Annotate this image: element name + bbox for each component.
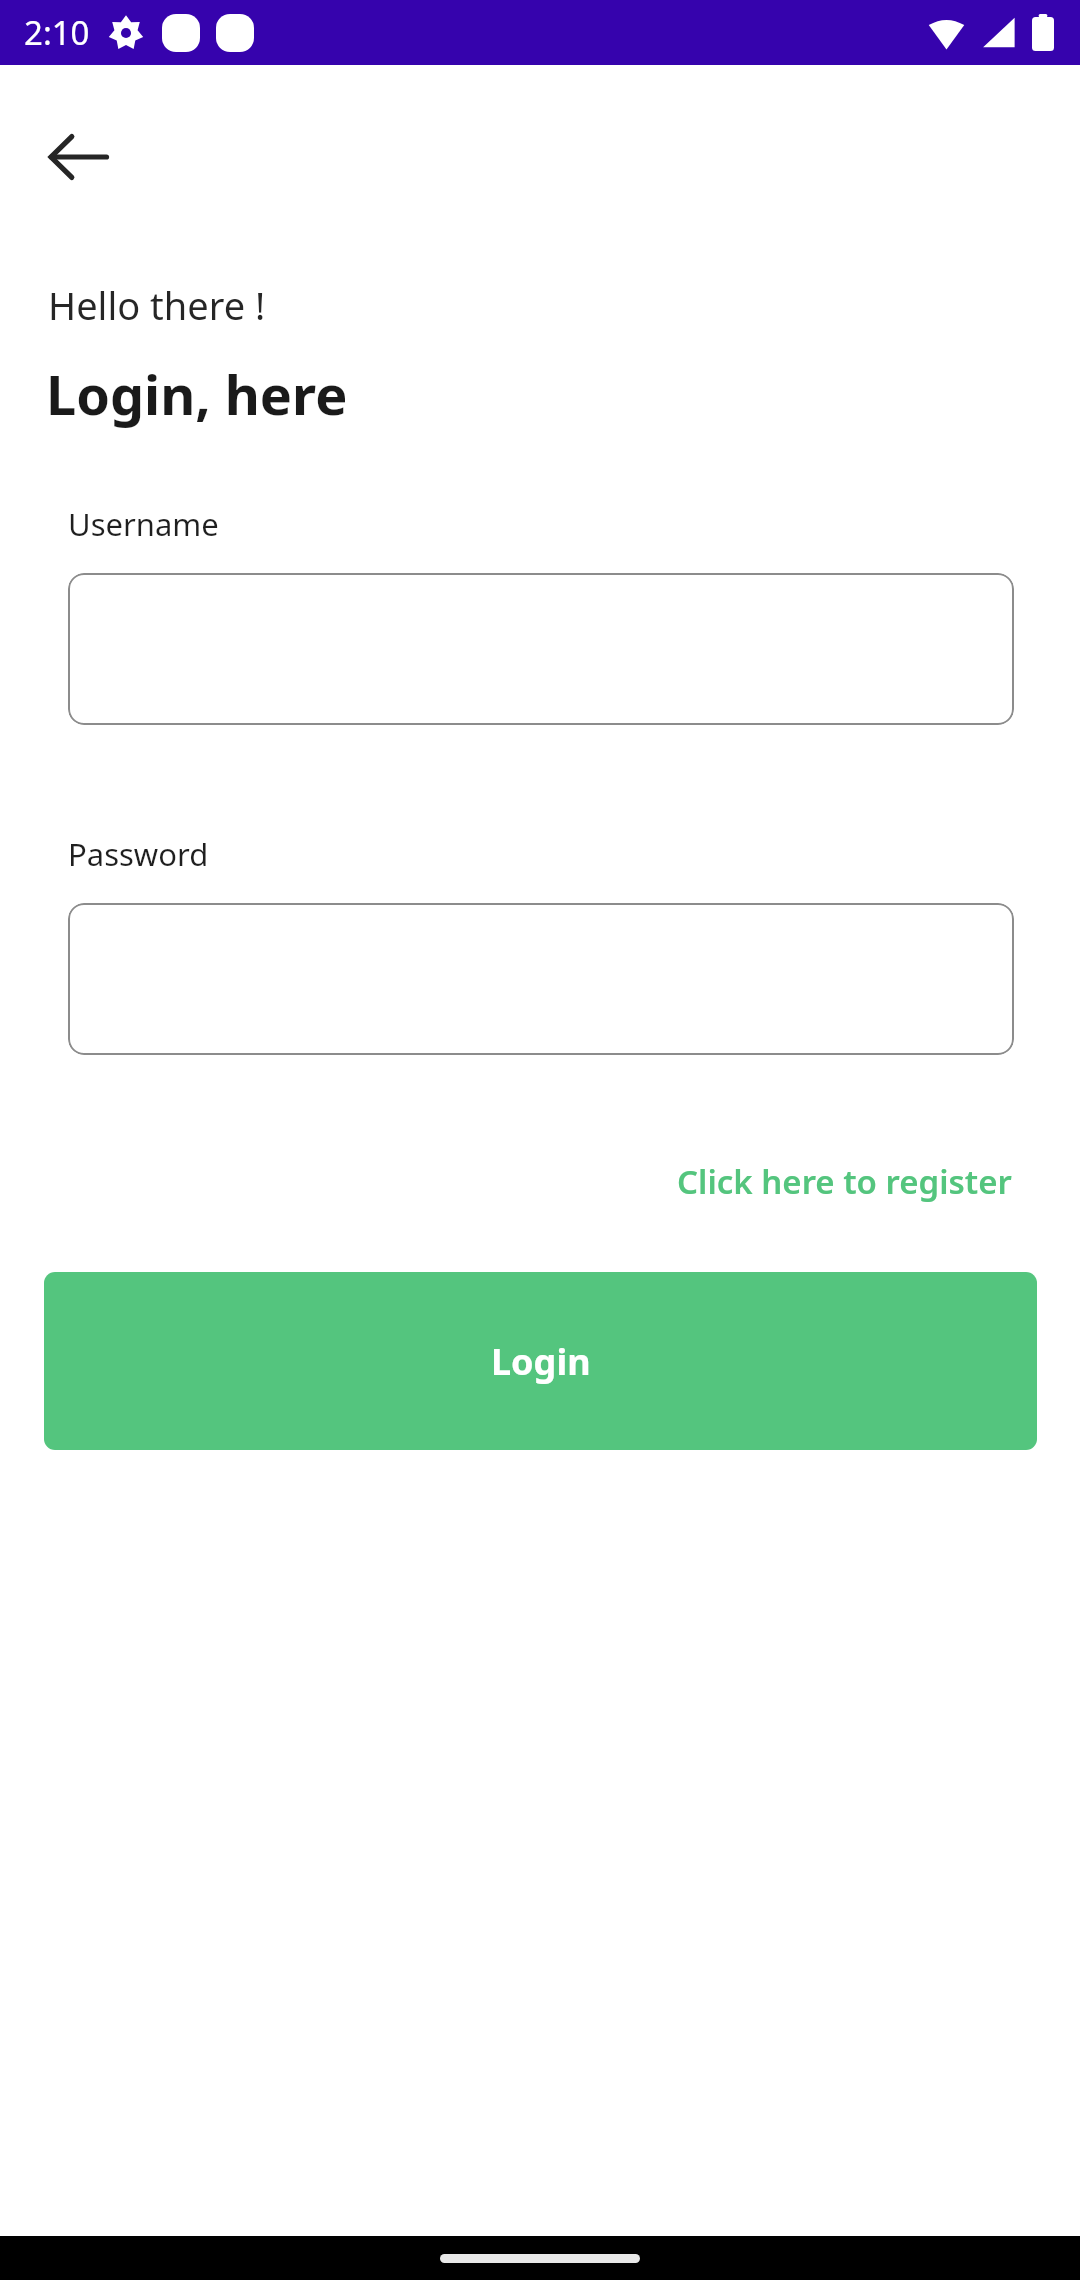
staticText: 2:10 (24, 10, 90, 55)
button[interactable]: Login (44, 1272, 1037, 1450)
staticText: Username (68, 503, 219, 545)
staticText: Click here to register (677, 1159, 1012, 1204)
staticText: Login (491, 1337, 591, 1386)
staticText: Login, here (46, 357, 348, 431)
button[interactable]: Click here to register (675, 1153, 1014, 1210)
staticText: Password (68, 833, 209, 875)
button[interactable] (68, 573, 1014, 725)
button[interactable]: Back (30, 109, 126, 205)
staticText: Hello there ! (48, 279, 266, 331)
button[interactable] (68, 903, 1014, 1055)
